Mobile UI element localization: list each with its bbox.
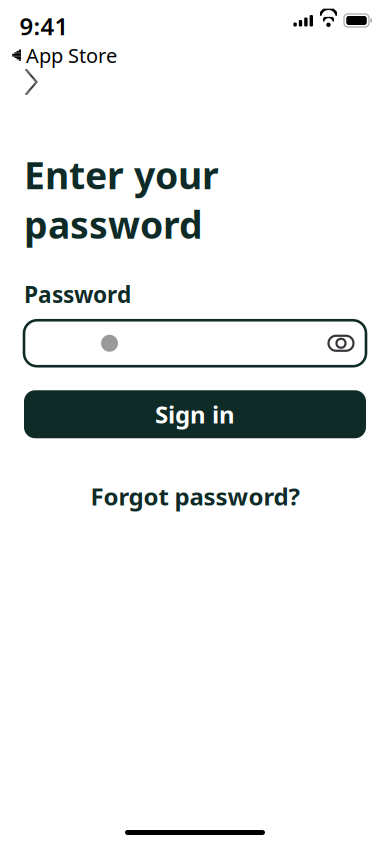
button[interactable]: Forgot password? [24,472,366,520]
button[interactable]: Back [9,59,55,105]
staticText: Password [24,279,131,309]
staticText: 9:41 [19,10,68,42]
button[interactable]: Sign in [24,390,366,438]
staticText: Enter your password [24,150,219,249]
staticText: Sign in [155,398,235,430]
staticText: Forgot password? [90,480,299,512]
button[interactable]: Show password [324,326,358,360]
button[interactable]: App Store [3,42,117,68]
staticText: App Store [26,42,117,68]
